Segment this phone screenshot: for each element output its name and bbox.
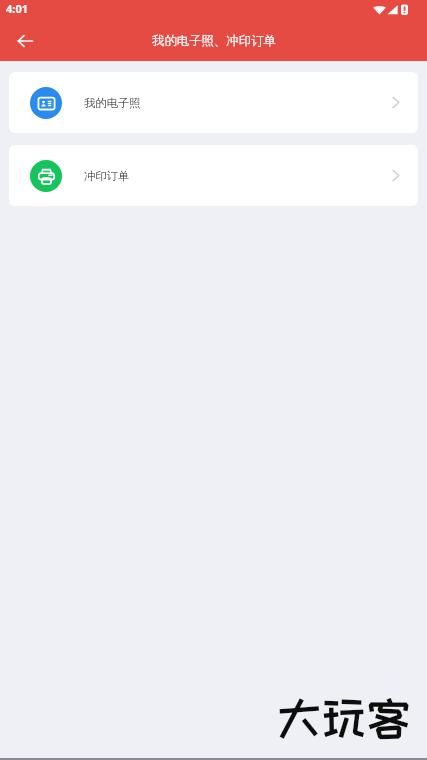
- staticText: 我的电子照、冲印订单: [152, 33, 276, 49]
- staticText: 大玩客: [277, 693, 411, 742]
- button[interactable]: 我的电子照: [9, 72, 418, 133]
- staticText: 4:01: [6, 1, 28, 16]
- button[interactable]: 冲印订单: [9, 145, 418, 206]
- button[interactable]: Back: [8, 25, 42, 59]
- staticText: 我的电子照: [84, 96, 141, 110]
- staticText: 冲印订单: [84, 169, 130, 183]
